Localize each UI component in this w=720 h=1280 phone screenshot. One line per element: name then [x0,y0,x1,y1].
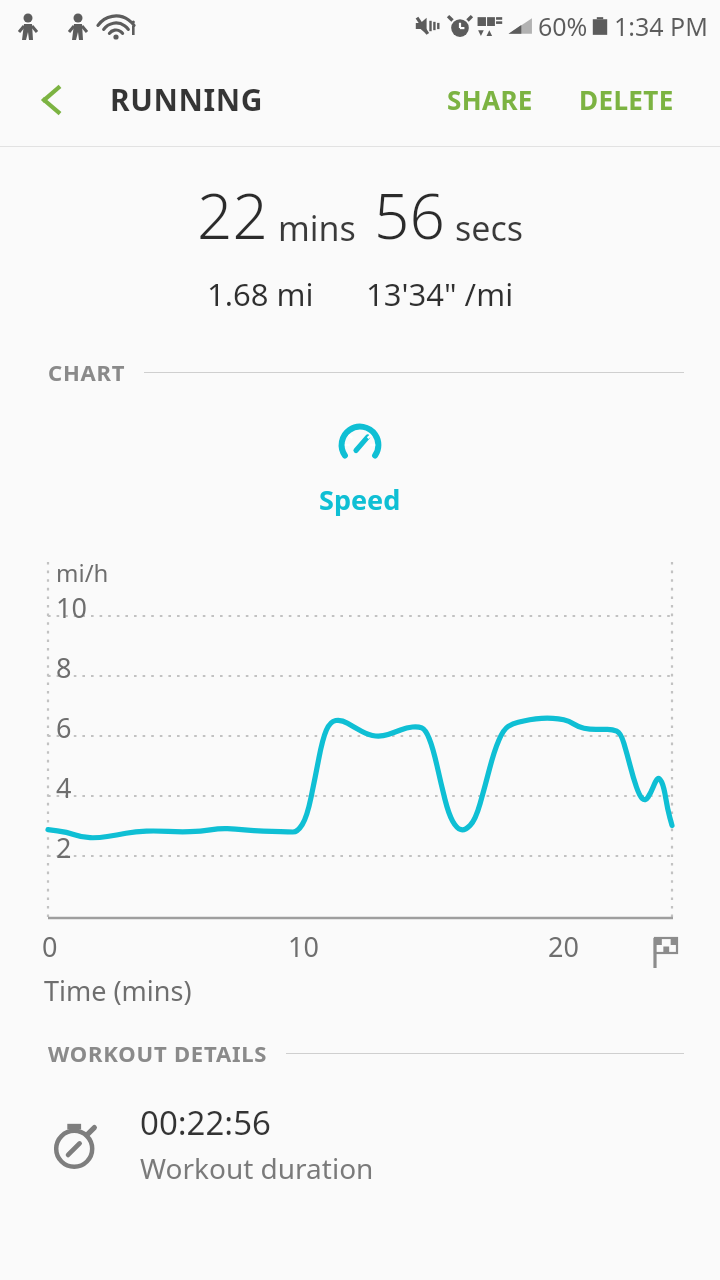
staticText: RUNNING [110,79,264,120]
staticText: 4 [56,769,72,806]
staticText: 1:34 PM [614,9,708,43]
staticText: Speed [319,481,401,518]
staticText: 1.68 mi [207,273,314,315]
staticText: 10 [56,589,87,626]
staticText: WORKOUT DETAILS [48,1038,268,1068]
staticText: Time (mins) [44,972,192,1009]
staticText: 0 [42,928,58,965]
staticText: CHART [48,357,126,387]
staticText: mi/h [56,556,109,589]
staticText: 6 [56,709,72,746]
staticText: secs [455,205,524,251]
button[interactable]: SHARE [443,72,537,127]
staticText: mins [278,205,356,251]
staticText: 22 [197,173,268,257]
staticText: 10 [288,928,319,965]
staticText: 56 [374,173,445,257]
staticText: Workout duration [140,1149,374,1187]
staticText: 2 [56,829,72,866]
button[interactable]: Speed chart [329,413,391,475]
button[interactable]: 00:22:56 [0,1096,720,1197]
button[interactable]: Back [22,69,84,131]
staticText: SHARE [447,82,533,117]
staticText: 60% [538,9,588,43]
staticText: 13'34" /mi [366,273,514,315]
staticText: 20 [548,928,579,965]
staticText: DELETE [579,82,674,117]
staticText: 8 [56,649,72,686]
button[interactable]: DELETE [575,72,678,127]
staticText: 00:22:56 [140,1100,271,1145]
